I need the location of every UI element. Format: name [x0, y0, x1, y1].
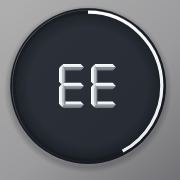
button[interactable]: Countdown timer, 33 remaining	[0, 0, 180, 180]
